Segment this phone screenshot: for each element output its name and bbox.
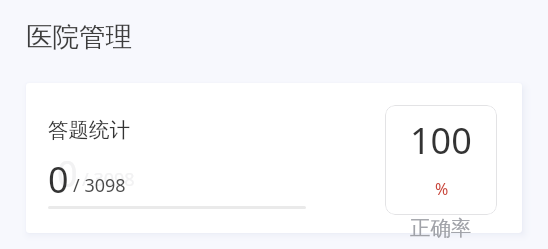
staticText: 正确率: [410, 215, 472, 241]
staticText: 0: [57, 149, 78, 198]
staticText: / 3098: [73, 173, 126, 198]
staticText: / 3098: [82, 167, 135, 192]
staticText: 医院管理: [26, 20, 132, 53]
staticText: %: [435, 178, 449, 200]
button[interactable]: 正确率 100%: [385, 105, 497, 215]
button[interactable]: 答题统计: [26, 83, 522, 233]
staticText: 答题统计: [48, 117, 130, 143]
staticText: 0: [48, 155, 69, 204]
staticText: 100: [410, 116, 472, 165]
